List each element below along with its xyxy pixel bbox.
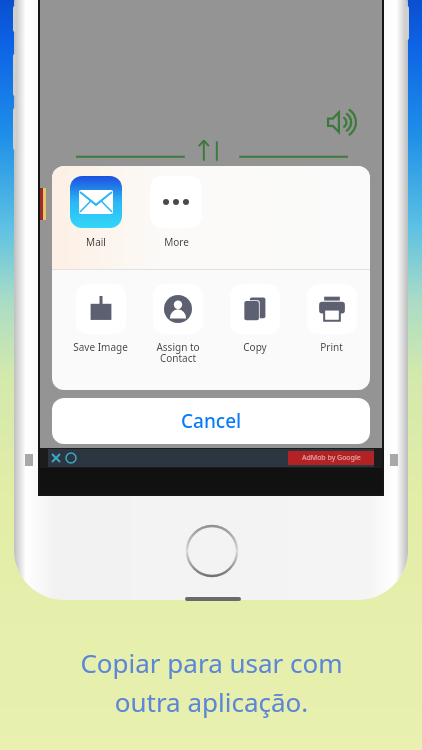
staticText: Cancel (181, 408, 242, 434)
staticText: AdMob by Google (302, 453, 361, 463)
other: Print (318, 295, 346, 323)
staticText: More (164, 235, 189, 249)
other: Assign to Contact (164, 295, 192, 323)
staticText: Print (320, 340, 343, 354)
other: Copy (242, 296, 268, 322)
button[interactable]: Cancel (52, 398, 370, 444)
other: Mail (70, 176, 122, 228)
button[interactable]: Print (293, 284, 370, 354)
button[interactable]: Copy (216, 284, 293, 354)
staticText: Copy (243, 340, 267, 354)
staticText: Assign to Contact (156, 340, 200, 365)
staticText: Copiar para usar com outra aplicação. (80, 645, 343, 720)
other: More (150, 176, 202, 228)
other: Save Image (88, 296, 114, 322)
button[interactable]: Mail (66, 176, 126, 249)
button[interactable]: Assign to Contact (139, 284, 216, 365)
staticText: Save Image (73, 340, 128, 354)
button[interactable]: Save Image (62, 284, 139, 354)
button[interactable]: More (146, 176, 206, 249)
staticText: Mail (86, 235, 106, 249)
